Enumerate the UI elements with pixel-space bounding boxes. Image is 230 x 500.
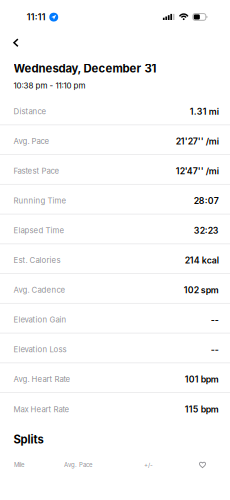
staticText: 12'47'' /mi [176,166,219,176]
staticText: 115 bpm [185,404,219,415]
staticText: Max Heart Rate [14,405,70,414]
staticText: 102 spm [184,285,219,295]
button[interactable]: Avg. Heart Rate [0,363,230,393]
button[interactable]: Running Time [0,185,230,215]
button[interactable]: Elapsed Time [0,214,230,244]
staticText: Wednesday, December 31 [14,62,157,75]
staticText: Distance [14,107,47,116]
staticText: Elevation Loss [14,345,67,354]
staticText: 32:23 [194,225,219,236]
button[interactable]: Fastest Pace [0,155,230,185]
staticText: Est. Calories [14,255,61,265]
button[interactable]: Elevation Loss [0,333,230,363]
staticText: Elapsed Time [14,226,65,235]
button[interactable]: Max Heart Rate [0,393,230,423]
staticText: Splits [14,433,44,446]
staticText: Fastest Pace [14,166,60,176]
staticText: 101 bpm [185,374,219,384]
staticText: Running Time [14,196,67,205]
staticText: 10:38 pm - 11:10 pm [14,81,86,90]
button[interactable]: Avg. Pace [0,125,230,155]
button[interactable]: Elevation Gain [0,304,230,334]
staticText: Mile [14,461,24,468]
staticText: 21'27'' /mi [176,136,219,146]
button[interactable]: Avg. Cadence [0,274,230,304]
button[interactable]: Distance [0,95,230,125]
staticText: 11:11 [27,12,46,22]
staticText: Elevation Gain [14,315,67,324]
staticText: Avg. Heart Rate [14,374,71,384]
staticText: 214 kcal [185,255,219,265]
staticText: Avg. Pace [64,461,92,468]
staticText: -- [211,314,219,325]
button[interactable]: Est. Calories [0,244,230,274]
staticText: Avg. Cadence [14,285,66,295]
staticText: +/- [144,461,153,468]
staticText: Avg. Pace [14,136,50,146]
staticText: -- [211,344,219,355]
staticText: 1.31 mi [190,106,219,117]
staticText: 28:07 [194,195,219,206]
button[interactable]: Back [0,37,28,57]
